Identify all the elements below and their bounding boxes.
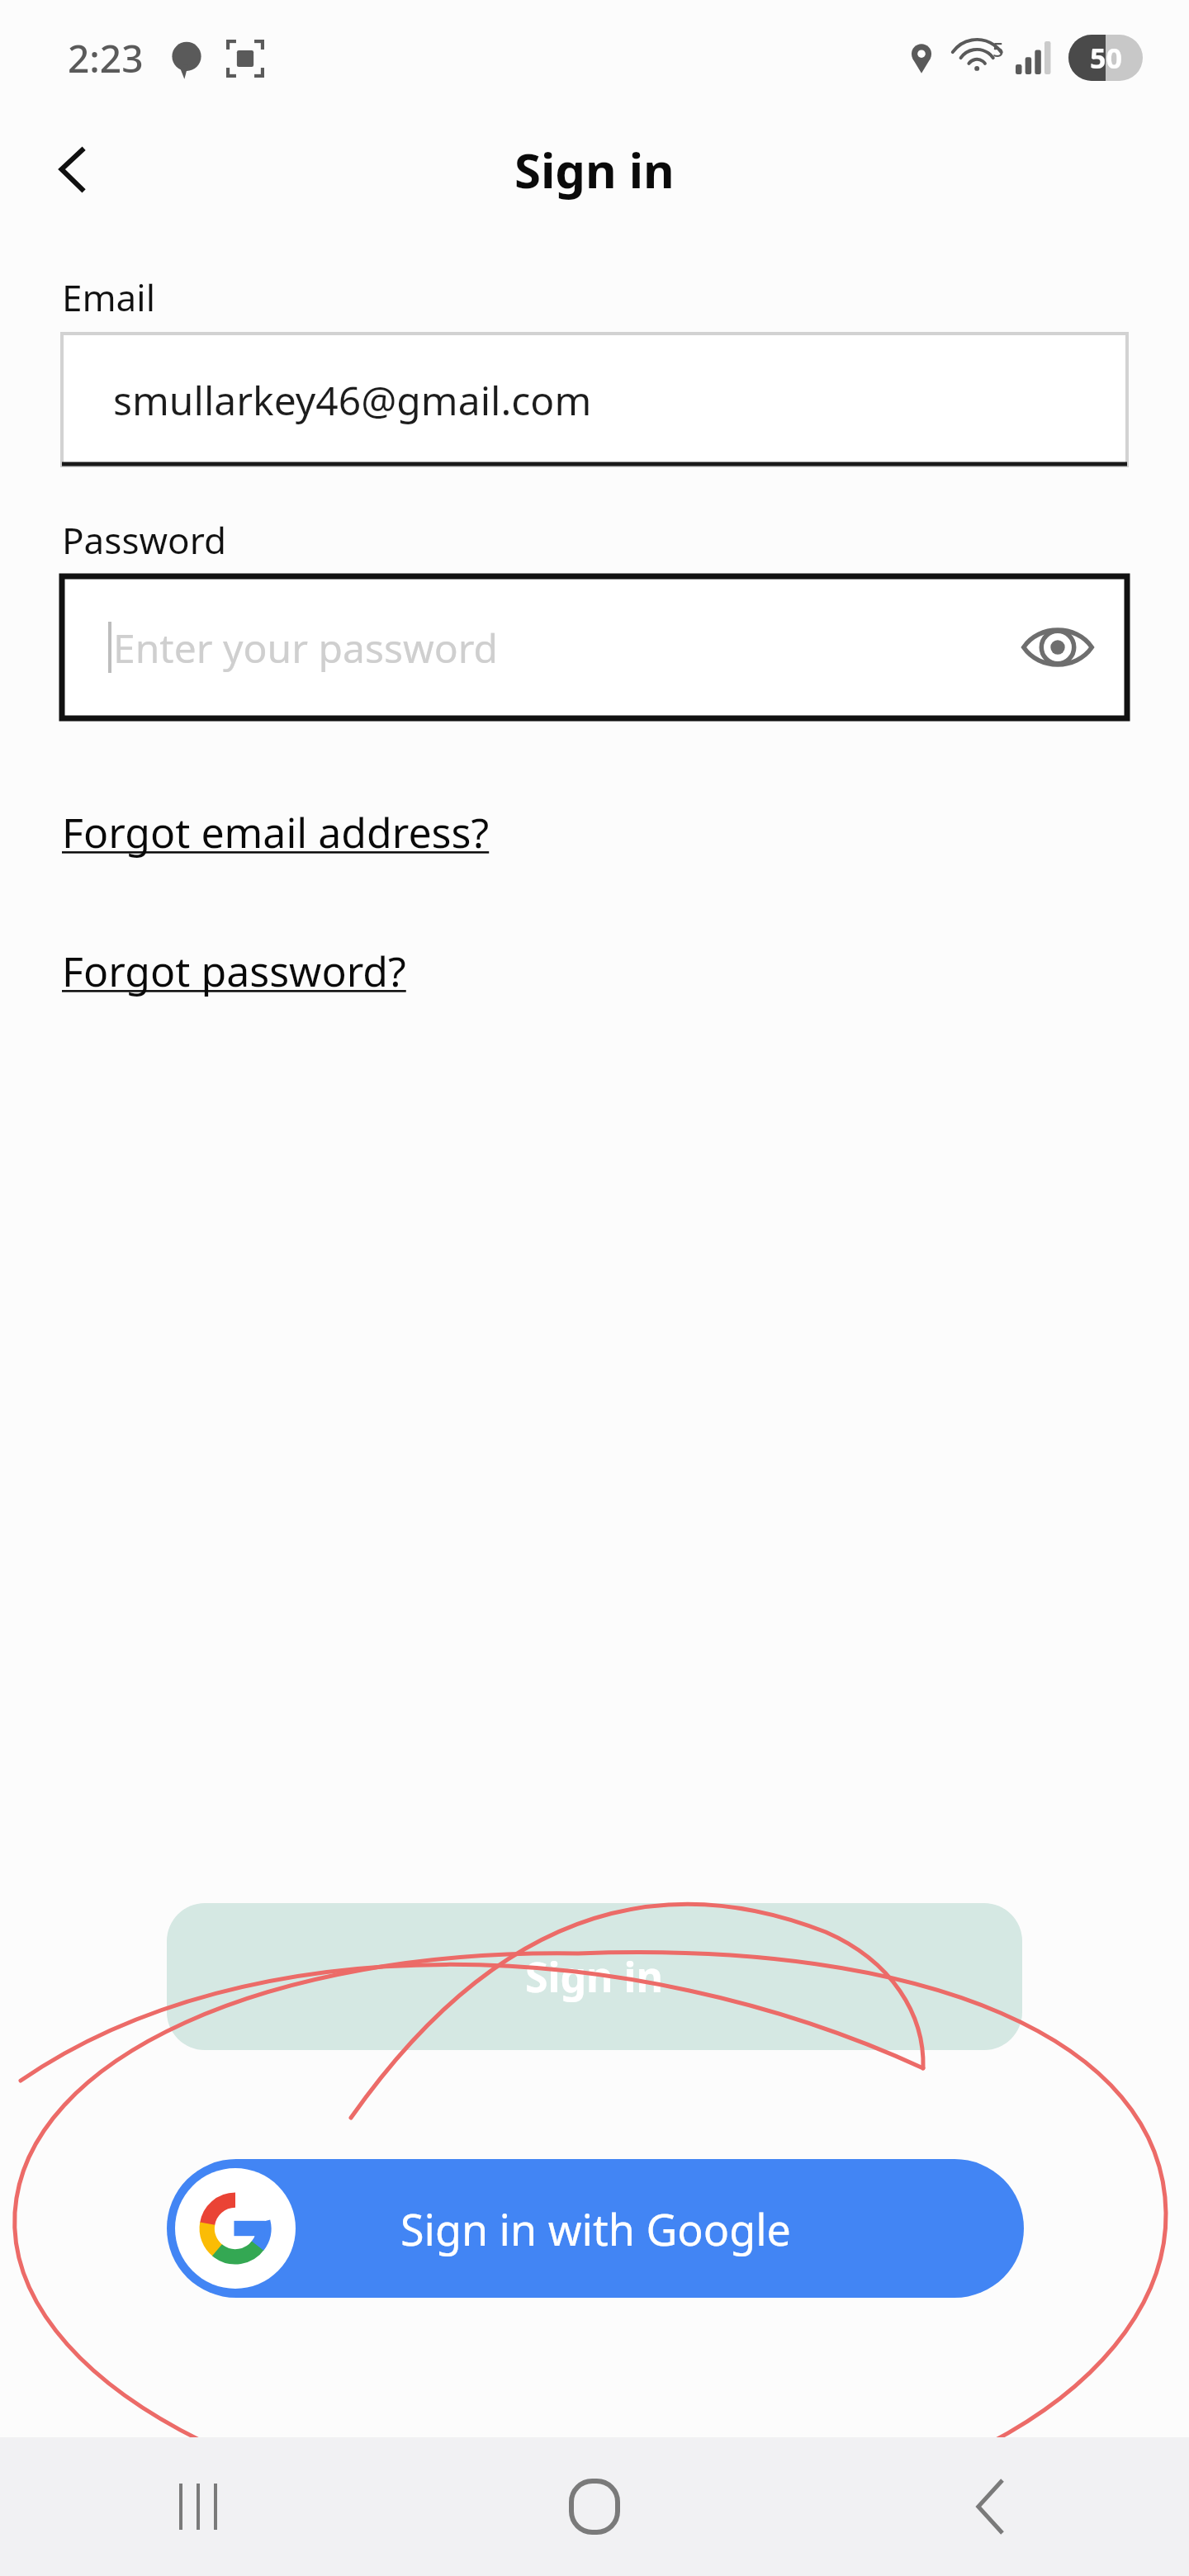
staticText: Email <box>62 272 155 322</box>
staticText: Enter your password <box>113 621 499 675</box>
staticText: 50 <box>1090 39 1122 77</box>
button[interactable]: Sign in <box>167 1903 1022 2050</box>
staticText: Forgot email address? <box>62 804 490 860</box>
staticText: 5 <box>992 36 1004 63</box>
button[interactable]: Recent apps <box>0 2437 396 2576</box>
button[interactable]: Enter your password <box>62 576 1127 718</box>
staticText: 2:23 <box>68 32 144 84</box>
button[interactable]: Show password <box>1016 606 1099 689</box>
staticText: smullarkey46@gmail.com <box>113 373 592 427</box>
staticText: Sign in with Google <box>400 2200 791 2258</box>
button[interactable]: Back <box>28 124 119 215</box>
button[interactable]: Home <box>396 2437 793 2576</box>
button[interactable]: Sign in with Google <box>167 2159 1024 2298</box>
button[interactable]: smullarkey46@gmail.com <box>62 334 1127 466</box>
staticText: Sign in <box>514 137 675 202</box>
button[interactable]: Forgot email address? <box>62 804 490 860</box>
button[interactable]: Back <box>793 2437 1189 2576</box>
staticText: Sign in <box>525 1949 664 2005</box>
staticText: Password <box>62 515 227 565</box>
staticText: Forgot password? <box>62 943 406 999</box>
button[interactable]: Forgot password? <box>62 943 406 999</box>
